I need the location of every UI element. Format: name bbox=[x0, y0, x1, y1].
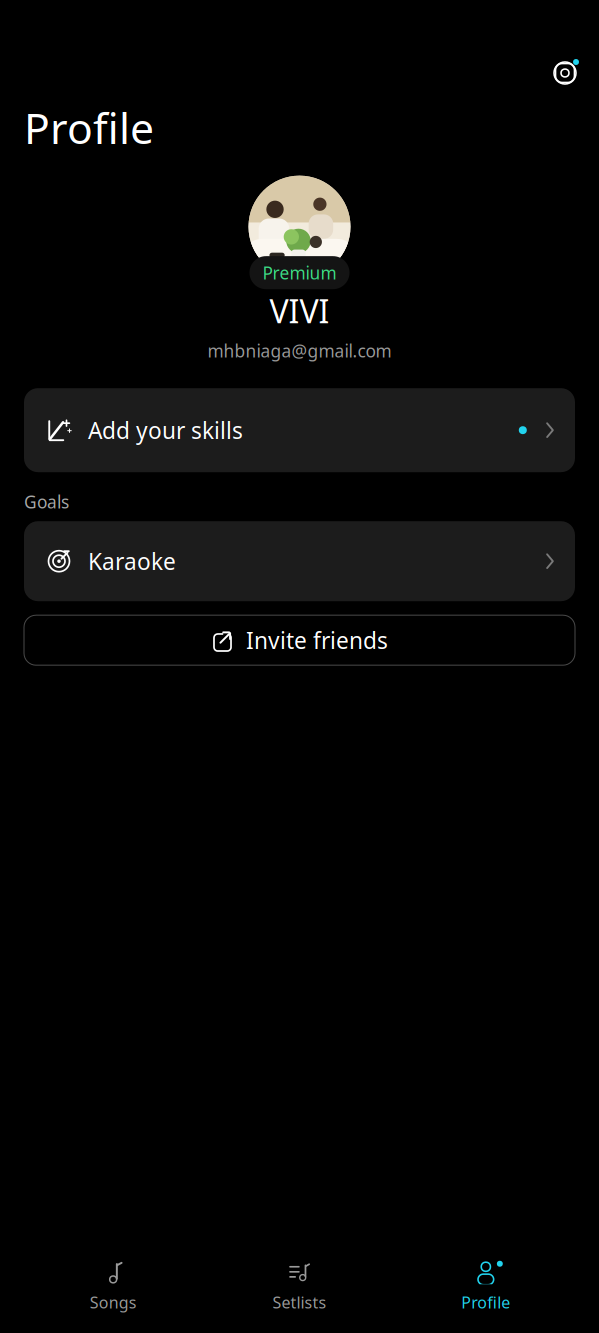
button[interactable]: Add your skills bbox=[24, 388, 575, 472]
staticText: Goals bbox=[24, 490, 69, 513]
staticText: VIVI bbox=[269, 290, 329, 332]
button[interactable]: Settings bbox=[545, 53, 585, 93]
staticText: Profile bbox=[24, 99, 154, 156]
button[interactable]: Profile bbox=[393, 1255, 579, 1319]
button[interactable]: Songs bbox=[20, 1255, 206, 1319]
staticText: Premium bbox=[262, 261, 336, 284]
button[interactable]: Setlists bbox=[206, 1255, 393, 1319]
staticText: Add your skills bbox=[88, 415, 243, 445]
button[interactable]: Karaoke bbox=[24, 521, 575, 601]
button[interactable]: Invite friends bbox=[24, 615, 575, 665]
staticText: Setlists bbox=[272, 1292, 326, 1313]
staticText: Songs bbox=[90, 1292, 137, 1313]
staticText: Profile bbox=[461, 1292, 510, 1313]
staticText: mhbniaga@gmail.com bbox=[207, 339, 391, 362]
staticText: Karaoke bbox=[88, 546, 176, 576]
staticText: Invite friends bbox=[246, 625, 388, 655]
